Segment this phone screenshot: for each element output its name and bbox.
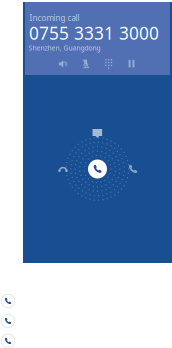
button[interactable]: Answer call xyxy=(88,159,107,178)
button[interactable]: Mute xyxy=(74,58,97,70)
button[interactable]: Call xyxy=(1,314,15,328)
button[interactable]: Send message xyxy=(89,125,105,141)
button[interactable]: Call xyxy=(1,334,15,348)
button[interactable]: Decline call xyxy=(55,161,71,177)
button[interactable]: Answer with handset xyxy=(125,161,141,177)
button[interactable]: Speaker xyxy=(51,58,74,70)
button[interactable]: Call xyxy=(1,294,15,308)
staticText: 0755 3331 3000 xyxy=(29,21,159,44)
staticText: Incoming call xyxy=(29,13,79,23)
button[interactable]: Keypad xyxy=(97,58,120,70)
button[interactable]: Hold xyxy=(120,58,143,70)
button[interactable]: Incoming call xyxy=(25,2,170,75)
staticText: Shenzhen, Guangdong xyxy=(28,44,100,52)
